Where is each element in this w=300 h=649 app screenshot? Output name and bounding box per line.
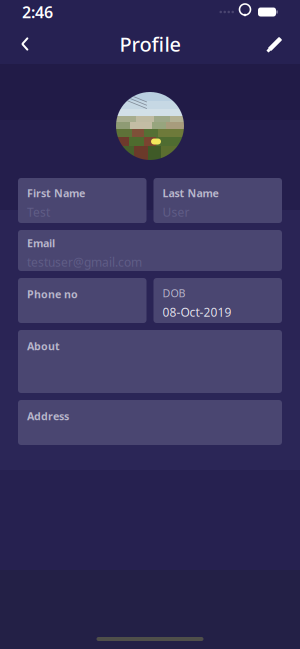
staticText: About	[27, 339, 60, 353]
button[interactable]: Edit	[258, 27, 292, 61]
button[interactable]: About	[18, 330, 282, 393]
button[interactable]: DOB	[153, 278, 282, 323]
staticText: 2:46	[22, 1, 53, 23]
staticText: testuser@gmail.com	[27, 254, 142, 270]
staticText: User	[162, 204, 189, 220]
staticText: Address	[27, 409, 69, 423]
staticText: Email	[27, 236, 55, 250]
staticText: First Name	[27, 186, 85, 200]
button[interactable]: First Name	[18, 178, 146, 223]
staticText: Phone no	[27, 287, 78, 301]
staticText: Profile	[119, 31, 180, 57]
button[interactable]: Back	[8, 27, 42, 61]
button[interactable]: Phone no	[18, 278, 146, 323]
staticText: DOB	[162, 286, 185, 300]
button[interactable]: Address	[18, 400, 282, 445]
button[interactable]: Last Name	[153, 178, 282, 223]
staticText: Last Name	[162, 186, 218, 200]
staticText: Test	[27, 204, 50, 220]
staticText: 08-Oct-2019	[162, 304, 231, 320]
button[interactable]: Email	[18, 230, 282, 271]
